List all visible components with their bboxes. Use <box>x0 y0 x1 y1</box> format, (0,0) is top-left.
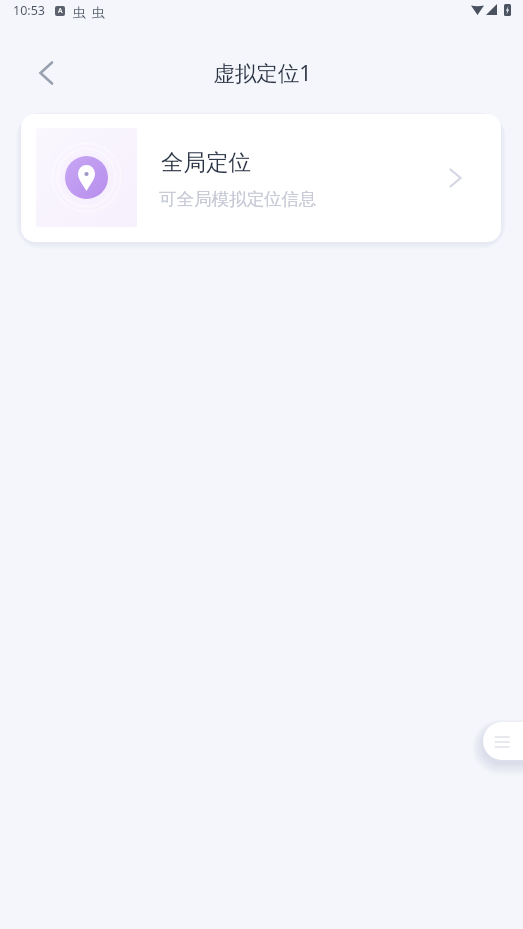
button[interactable]: 全局定位 <box>21 114 501 242</box>
staticText: 全局定位 <box>161 148 251 176</box>
staticText: 虫 <box>73 4 86 20</box>
staticText: A <box>58 6 63 16</box>
button[interactable]: Back <box>26 53 65 92</box>
staticText: 虫 <box>92 4 105 20</box>
staticText: 10:53 <box>13 2 45 19</box>
button[interactable]: Menu <box>483 722 523 760</box>
staticText: 虚拟定位1 <box>213 58 312 87</box>
staticText: 可全局模拟定位信息 <box>159 188 317 210</box>
